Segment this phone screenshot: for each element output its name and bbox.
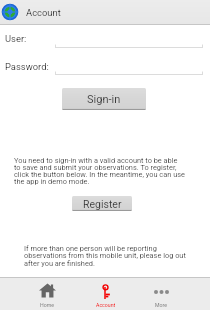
button[interactable]: Text field [55,68,203,75]
button[interactable]: Sign-in [62,88,146,110]
staticText: Account [96,302,116,308]
button[interactable]: More [133,278,189,310]
staticText: Sign-in [87,93,121,106]
staticText: Register [83,198,122,210]
button[interactable]: Account [0,0,210,24]
staticText: Account [26,7,61,18]
other: Account [103,285,110,299]
staticText: If more than one person will be reportin… [24,244,189,268]
other: More [154,290,169,294]
staticText: User: [5,33,27,44]
button[interactable]: Register [72,196,132,211]
staticText: Home [40,302,54,308]
button[interactable]: Home [19,278,75,310]
other: Home [39,283,56,298]
staticText: More [155,302,167,308]
staticText: You need to sign-in with a valid account… [14,156,185,185]
button[interactable]: Text field [55,41,203,48]
button[interactable]: Account [78,278,134,310]
staticText: Password: [5,61,49,72]
